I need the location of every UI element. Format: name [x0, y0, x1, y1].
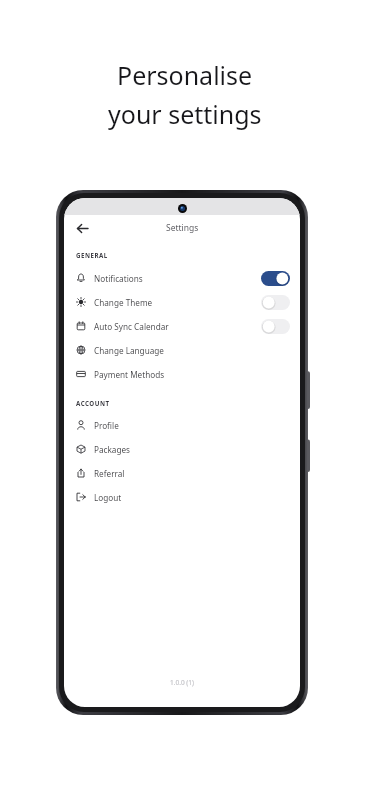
staticText: Settings: [166, 222, 199, 234]
staticText: 1.0.0 (1): [170, 678, 194, 687]
button[interactable]: Toggle off: [261, 295, 290, 310]
button[interactable]: Auto Sync Calendar: [64, 314, 300, 338]
staticText: Change Language: [94, 345, 164, 356]
button[interactable]: Toggle off: [261, 319, 290, 334]
button[interactable]: Back: [71, 217, 93, 239]
staticText: Notifications: [94, 273, 143, 284]
staticText: Change Theme: [94, 297, 153, 308]
staticText: Logout: [94, 492, 122, 503]
staticText: ACCOUNT: [76, 399, 110, 407]
button[interactable]: Profile: [64, 413, 300, 437]
button[interactable]: Payment Methods: [64, 362, 300, 386]
staticText: Payment Methods: [94, 369, 165, 380]
button[interactable]: Packages: [64, 437, 300, 461]
staticText: Profile: [94, 420, 119, 431]
button[interactable]: Notifications: [64, 266, 300, 290]
staticText: Personalise: [117, 58, 253, 92]
staticText: Auto Sync Calendar: [94, 321, 169, 332]
staticText: Packages: [94, 444, 131, 455]
button[interactable]: Toggle on: [261, 271, 290, 286]
staticText: GENERAL: [76, 251, 108, 259]
button[interactable]: Change Theme: [64, 290, 300, 314]
staticText: your settings: [108, 97, 262, 131]
button[interactable]: Logout: [64, 485, 300, 509]
button[interactable]: Change Language: [64, 338, 300, 362]
staticText: Referral: [94, 468, 125, 479]
button[interactable]: Referral: [64, 461, 300, 485]
